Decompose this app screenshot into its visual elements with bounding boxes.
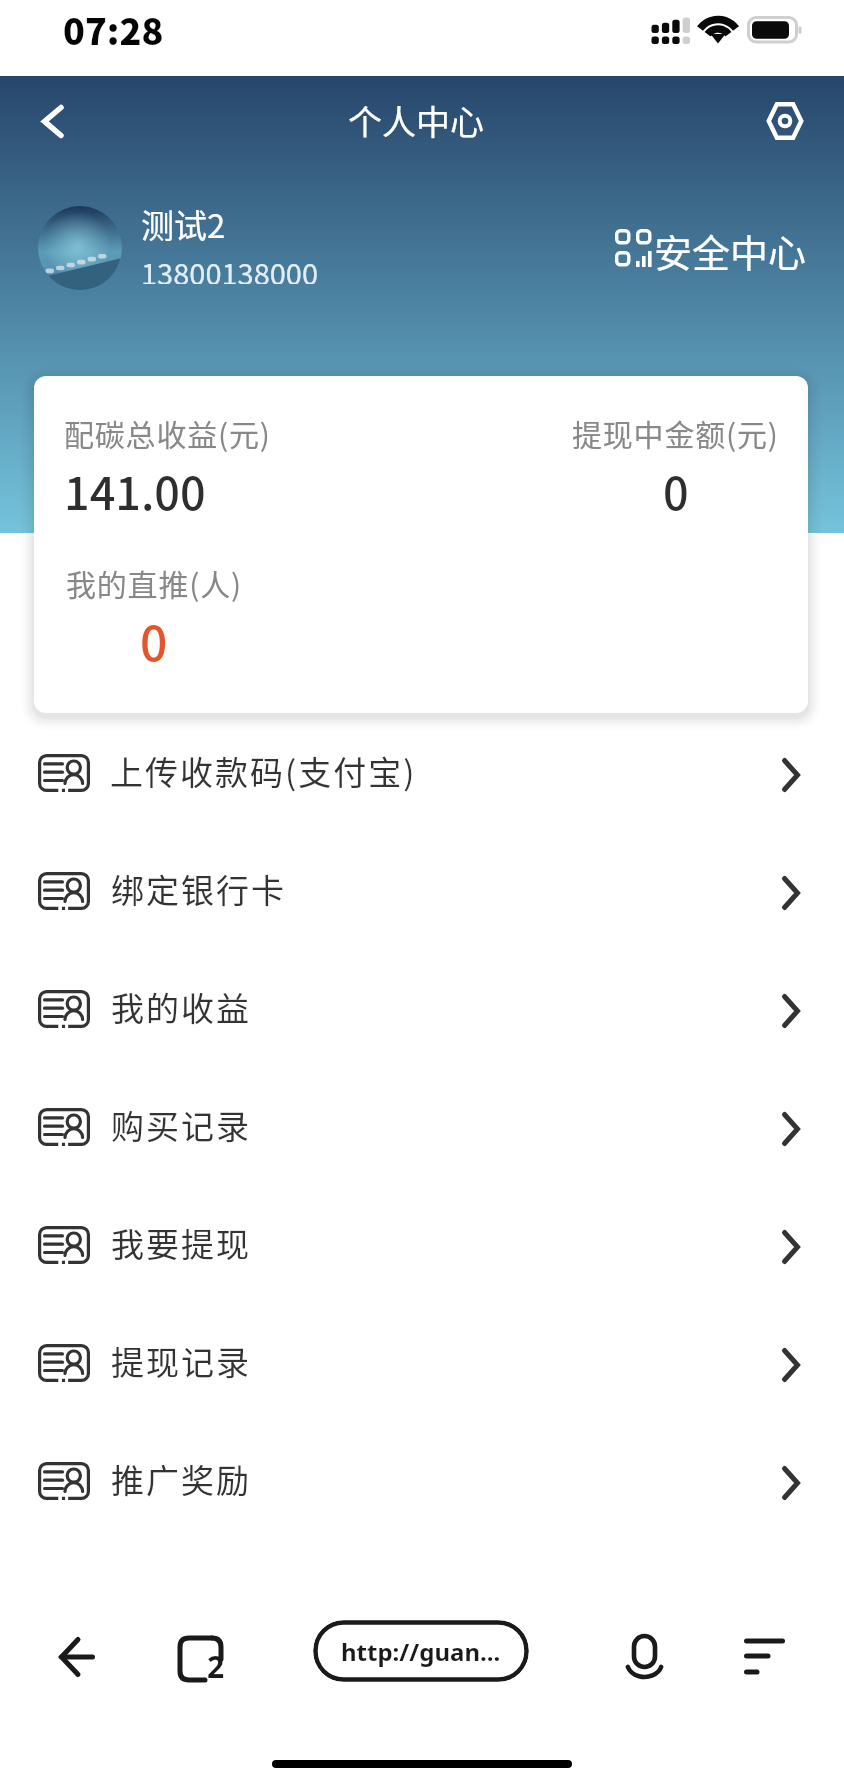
- staticText: 上传收款码(支付宝): [110, 747, 417, 795]
- staticText: 0: [140, 605, 168, 675]
- button[interactable]: 我要提现: [0, 1185, 844, 1303]
- staticText: 141.00: [64, 458, 206, 523]
- button[interactable]: Avatar: [38, 206, 122, 290]
- staticText: 配碳总收益(元): [64, 411, 271, 454]
- button[interactable]: 我的收益: [0, 949, 844, 1067]
- button[interactable]: 上传收款码(支付宝): [0, 713, 844, 831]
- staticText: 提现记录: [110, 1337, 250, 1385]
- staticText: 我的收益: [110, 983, 250, 1031]
- button[interactable]: 推广奖励: [0, 1421, 844, 1539]
- staticText: 购买记录: [110, 1101, 250, 1149]
- button[interactable]: 绑定银行卡: [0, 831, 844, 949]
- staticText: 安全中心: [654, 223, 807, 278]
- staticText: 13800138000: [141, 251, 319, 284]
- button[interactable]: 提现记录: [0, 1303, 844, 1421]
- button[interactable]: 安全中心: [615, 223, 807, 278]
- button[interactable]: Voice search: [612, 1625, 676, 1689]
- button[interactable]: Back: [20, 90, 82, 152]
- staticText: 0: [663, 458, 689, 523]
- staticText: 2: [207, 1646, 225, 1687]
- button[interactable]: Tabs: [172, 1631, 228, 1687]
- button[interactable]: Back: [48, 1627, 108, 1687]
- button[interactable]: http://guan...: [313, 1620, 529, 1682]
- staticText: 绑定银行卡: [110, 865, 285, 913]
- button[interactable]: 购买记录: [0, 1067, 844, 1185]
- staticText: 我要提现: [110, 1219, 250, 1267]
- staticText: 推广奖励: [110, 1455, 250, 1503]
- staticText: 07:28: [63, 3, 164, 55]
- staticText: 提现中金额(元): [572, 411, 779, 454]
- staticText: 测试2: [141, 200, 226, 248]
- button[interactable]: Settings: [754, 90, 816, 152]
- button[interactable]: Menu: [738, 1632, 794, 1688]
- staticText: 我的直推(人): [66, 561, 242, 604]
- staticText: http://guan...: [341, 1635, 501, 1668]
- staticText: 个人中心: [348, 96, 484, 145]
